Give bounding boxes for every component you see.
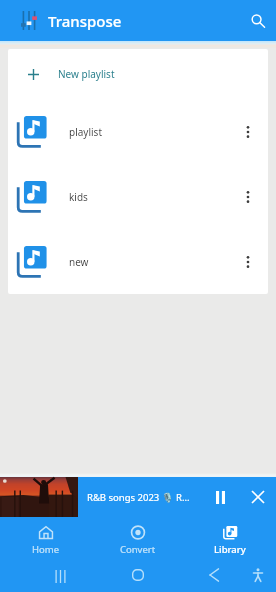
button[interactable]: New playlist <box>8 49 268 99</box>
staticText: Home <box>32 543 60 556</box>
staticText: kids <box>69 190 88 204</box>
button[interactable]: Library <box>184 517 276 562</box>
button[interactable]: Accessibility <box>253 568 263 582</box>
button[interactable]: More options <box>231 245 265 279</box>
staticText: new <box>69 255 89 269</box>
button[interactable]: More options <box>231 115 265 149</box>
button[interactable]: playlist <box>8 99 268 164</box>
button[interactable]: Convert <box>92 517 184 562</box>
staticText: playlist <box>69 125 102 139</box>
button[interactable]: Pause <box>203 480 237 514</box>
button[interactable]: Home <box>0 517 92 562</box>
staticText: New playlist <box>58 67 115 81</box>
button[interactable]: Search <box>241 4 275 38</box>
staticText: Library <box>214 543 246 556</box>
button[interactable]: Home <box>132 569 144 581</box>
button[interactable]: Close <box>241 480 275 514</box>
button[interactable]: Back <box>209 568 219 582</box>
staticText: R&B songs 2023 🎙 R... <box>87 491 203 504</box>
button[interactable]: new <box>8 229 268 294</box>
button[interactable]: More options <box>231 180 265 214</box>
staticText: Transpose <box>48 11 122 31</box>
button[interactable]: Recents <box>55 570 66 583</box>
staticText: Convert <box>120 543 156 556</box>
button[interactable]: kids <box>8 164 268 229</box>
